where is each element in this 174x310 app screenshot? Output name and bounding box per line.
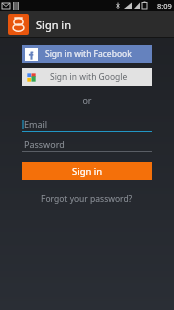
staticText: 8:09 bbox=[157, 1, 172, 11]
button[interactable]: Sign in bbox=[22, 162, 152, 180]
button[interactable]: Sign in with Facebook bbox=[22, 45, 152, 63]
button[interactable]: App icon bbox=[0, 11, 174, 38]
button[interactable]: Password bbox=[22, 138, 152, 152]
button[interactable]: Sign in with Google bbox=[22, 68, 152, 86]
staticText: Password bbox=[24, 138, 65, 150]
staticText: Sign in with Google bbox=[50, 71, 128, 83]
staticText: or bbox=[0, 94, 174, 106]
staticText: Sign in with Facebook bbox=[45, 48, 132, 60]
other: App icon bbox=[8, 14, 29, 35]
button[interactable]: Forgot your password? bbox=[0, 190, 174, 208]
staticText: Sign in bbox=[72, 165, 103, 178]
staticText: Forgot your password? bbox=[41, 193, 133, 205]
button[interactable]: Email bbox=[22, 118, 152, 132]
staticText: Email bbox=[24, 118, 48, 130]
staticText: Sign in bbox=[36, 17, 71, 32]
